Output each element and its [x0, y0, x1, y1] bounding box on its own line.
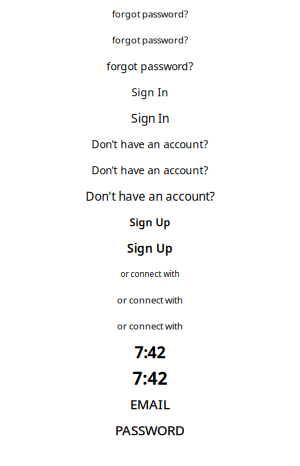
staticText: Sign In [131, 85, 168, 99]
staticText: or connect with [117, 320, 183, 332]
staticText: PASSWORD [115, 421, 185, 439]
staticText: Don't have an account? [91, 163, 208, 177]
staticText: or connect with [117, 294, 183, 306]
staticText: forgot password? [106, 59, 193, 73]
staticText: EMAIL [130, 395, 170, 413]
staticText: or connect with [120, 269, 179, 279]
staticText: forgot password? [112, 8, 188, 20]
staticText: Sign Up [129, 215, 170, 229]
staticText: Sign In [131, 110, 169, 126]
staticText: Sign Up [127, 240, 173, 256]
staticText: Don't have an account? [91, 137, 208, 151]
staticText: Don't have an account? [85, 188, 214, 204]
staticText: forgot password? [112, 34, 188, 46]
staticText: 7:42 [134, 341, 165, 363]
staticText: 7:42 [132, 366, 167, 389]
